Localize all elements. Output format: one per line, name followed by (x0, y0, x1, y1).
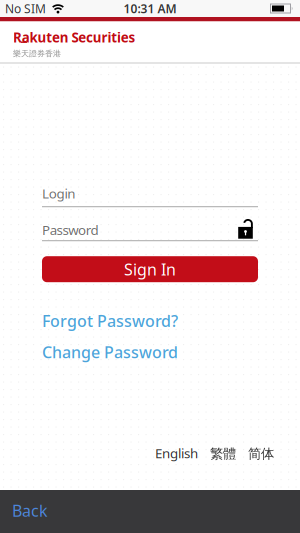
button[interactable]: Login (42, 184, 258, 207)
staticText: 简体 (248, 446, 274, 462)
button[interactable]: 繁體 (210, 446, 236, 462)
staticText: Login (42, 184, 75, 202)
button[interactable]: Change Password (42, 341, 178, 363)
staticText: English (155, 444, 198, 462)
staticText: No SIM (5, 0, 46, 16)
staticText: 繁體 (210, 446, 236, 462)
button[interactable]: English (155, 444, 198, 462)
button[interactable]: 简体 (248, 446, 274, 462)
staticText: 樂天證券香港 (13, 49, 61, 58)
button[interactable]: Forgot Password? (42, 310, 178, 331)
staticText: Forgot Password? (42, 310, 178, 331)
staticText: 10:31 AM (123, 0, 176, 16)
staticText: Rakuten Securities (13, 28, 136, 46)
button[interactable]: Password (42, 219, 258, 241)
button[interactable]: Back (12, 500, 48, 521)
staticText: Password (42, 221, 99, 239)
staticText: Sign In (124, 259, 176, 280)
staticText: Change Password (42, 341, 178, 363)
staticText: Back (12, 500, 48, 521)
button[interactable]: Sign In (42, 256, 258, 282)
